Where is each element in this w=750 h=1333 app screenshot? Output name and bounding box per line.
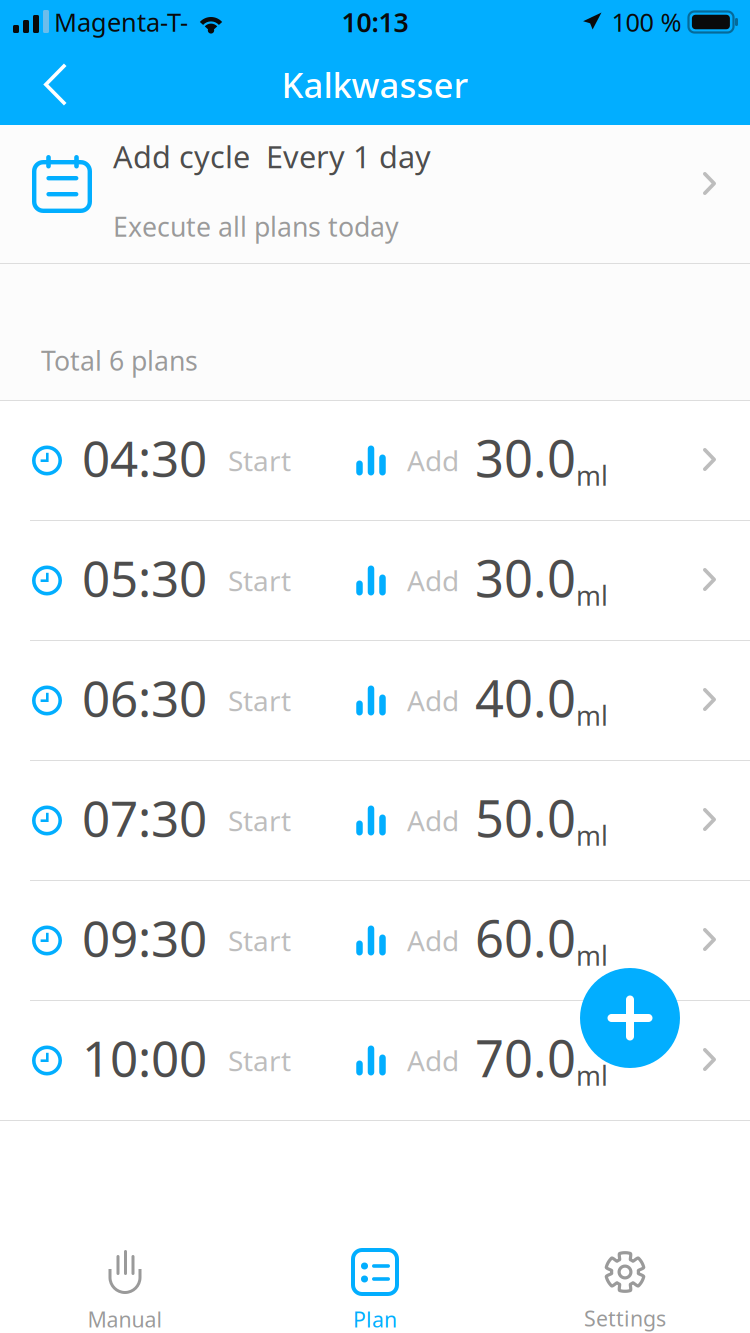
button[interactable]: Back (0, 44, 100, 125)
button[interactable]: 05:30 (0, 521, 750, 640)
staticText: Start (228, 682, 291, 719)
staticText: Start (228, 562, 291, 599)
staticText: Total 6 plans (41, 343, 198, 378)
staticText: 50.0 (475, 784, 576, 851)
staticText: 70.0 (475, 1024, 576, 1091)
staticText: 09:30 (82, 905, 207, 970)
button[interactable]: Add plan (580, 968, 680, 1068)
staticText: Plan (353, 1305, 397, 1333)
button[interactable]: 04:30 (0, 401, 750, 520)
staticText: ml (576, 458, 608, 493)
staticText: ml (576, 938, 608, 973)
staticText: Add (407, 682, 459, 719)
staticText: Start (228, 442, 291, 479)
button[interactable]: Plan (250, 1245, 500, 1333)
staticText: 10:13 (341, 4, 408, 40)
staticText: Start (228, 922, 291, 959)
staticText: Manual (87, 1305, 162, 1333)
staticText: 60.0 (475, 904, 576, 971)
staticText: Add (407, 442, 459, 479)
staticText: Kalkwasser (281, 61, 468, 107)
staticText: Add (407, 1042, 459, 1079)
staticText: Add (407, 802, 459, 839)
staticText: 06:30 (82, 665, 207, 730)
staticText: 40.0 (475, 664, 576, 731)
staticText: Settings (584, 1304, 666, 1332)
staticText: 30.0 (475, 424, 576, 491)
staticText: ml (576, 578, 608, 613)
staticText: 04:30 (82, 425, 207, 490)
staticText: Magenta-T- (54, 5, 188, 39)
staticText: 05:30 (82, 545, 207, 610)
staticText: Start (228, 1042, 291, 1079)
button[interactable]: 06:30 (0, 641, 750, 760)
button[interactable]: 07:30 (0, 761, 750, 880)
staticText: 10:00 (82, 1025, 207, 1090)
button[interactable]: Add cycle Every 1 day (0, 125, 750, 263)
button[interactable]: 10:00 (0, 1001, 750, 1120)
staticText: Execute all plans today (113, 209, 399, 244)
button[interactable]: Settings (500, 1245, 750, 1333)
staticText: Start (228, 802, 291, 839)
staticText: ml (576, 1058, 608, 1093)
button[interactable]: Manual (0, 1245, 250, 1333)
staticText: ml (576, 698, 608, 733)
staticText: ml (576, 818, 608, 853)
staticText: Add (407, 562, 459, 599)
staticText: Add cycle Every 1 day (113, 136, 431, 177)
staticText: 30.0 (475, 544, 576, 611)
staticText: 07:30 (82, 785, 207, 850)
staticText: 100 % (611, 5, 681, 39)
staticText: Add (407, 922, 459, 959)
button[interactable]: 09:30 (0, 881, 750, 1000)
